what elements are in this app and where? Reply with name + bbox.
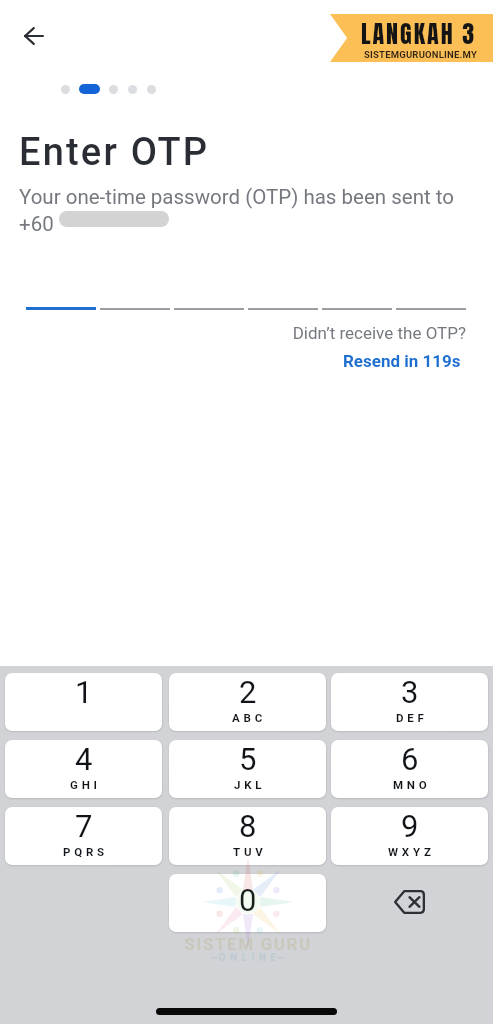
button[interactable]: 3 (331, 673, 488, 731)
button[interactable]: 4 (5, 740, 162, 798)
staticText: 1 (75, 674, 93, 710)
staticText: 8 (239, 808, 257, 844)
button[interactable]: 0 (169, 874, 326, 932)
button[interactable]: 6 (331, 740, 488, 798)
button[interactable]: Langkah 3 badge (330, 14, 493, 62)
button[interactable]: 5 (169, 740, 326, 798)
staticText: 4 (75, 741, 93, 777)
staticText: 9 (401, 808, 419, 844)
staticText: SISTEMGURUONLINE.MY (339, 49, 493, 60)
staticText: 0 (239, 882, 257, 918)
button[interactable]: 9 (331, 807, 488, 865)
staticText: GHI (70, 778, 101, 791)
button[interactable]: 2 (169, 673, 326, 731)
staticText: —O N L I N E— (173, 952, 323, 964)
staticText: Enter OTP (19, 130, 210, 175)
staticText: 2 (239, 674, 257, 710)
staticText: 7 (75, 808, 93, 844)
button[interactable]: 8 (169, 807, 326, 865)
staticText: 6 (401, 741, 419, 777)
staticText: Didn’t receive the OTP? (0, 323, 466, 343)
staticText: MNO (393, 778, 431, 791)
staticText: WXYZ (388, 845, 435, 858)
staticText: +60 (19, 212, 54, 236)
button[interactable]: Resend in 119s (0, 351, 461, 371)
button[interactable]: Back (13, 15, 55, 56)
staticText: Your one-time password (OTP) has been se… (19, 185, 454, 209)
staticText: 5 (239, 741, 257, 777)
button[interactable]: 1 (5, 673, 162, 731)
staticText: Resend in 119s (343, 351, 461, 371)
staticText: DEF (396, 711, 428, 724)
staticText: 3 (401, 674, 419, 710)
staticText: PQRS (63, 845, 108, 858)
staticText: JKL (234, 778, 266, 791)
staticText: LANGKAH 3 (337, 16, 493, 52)
staticText: SISTEM GURU (173, 934, 323, 954)
button[interactable]: 7 (5, 807, 162, 865)
staticText: TUV (233, 845, 267, 858)
staticText: ABC (232, 711, 267, 724)
button[interactable]: Backspace (331, 874, 488, 932)
